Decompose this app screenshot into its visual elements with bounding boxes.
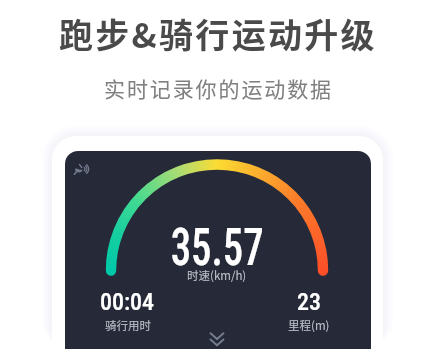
staticText: 时速(km/h) [187,267,247,283]
staticText: 里程(m) [288,317,330,333]
staticText: 23 [297,288,321,310]
staticText: 00:04 [100,288,155,310]
staticText: 35.57 [171,218,264,276]
staticText: 骑行用时 [105,317,151,333]
staticText: 实时记录你的运动数据 [104,73,333,103]
staticText: 跑步&骑行运动升级 [59,9,377,58]
button[interactable]: GPS signal [73,163,93,177]
button[interactable]: Ride dashboard preview [65,151,371,349]
button[interactable]: Expand details [202,330,232,347]
